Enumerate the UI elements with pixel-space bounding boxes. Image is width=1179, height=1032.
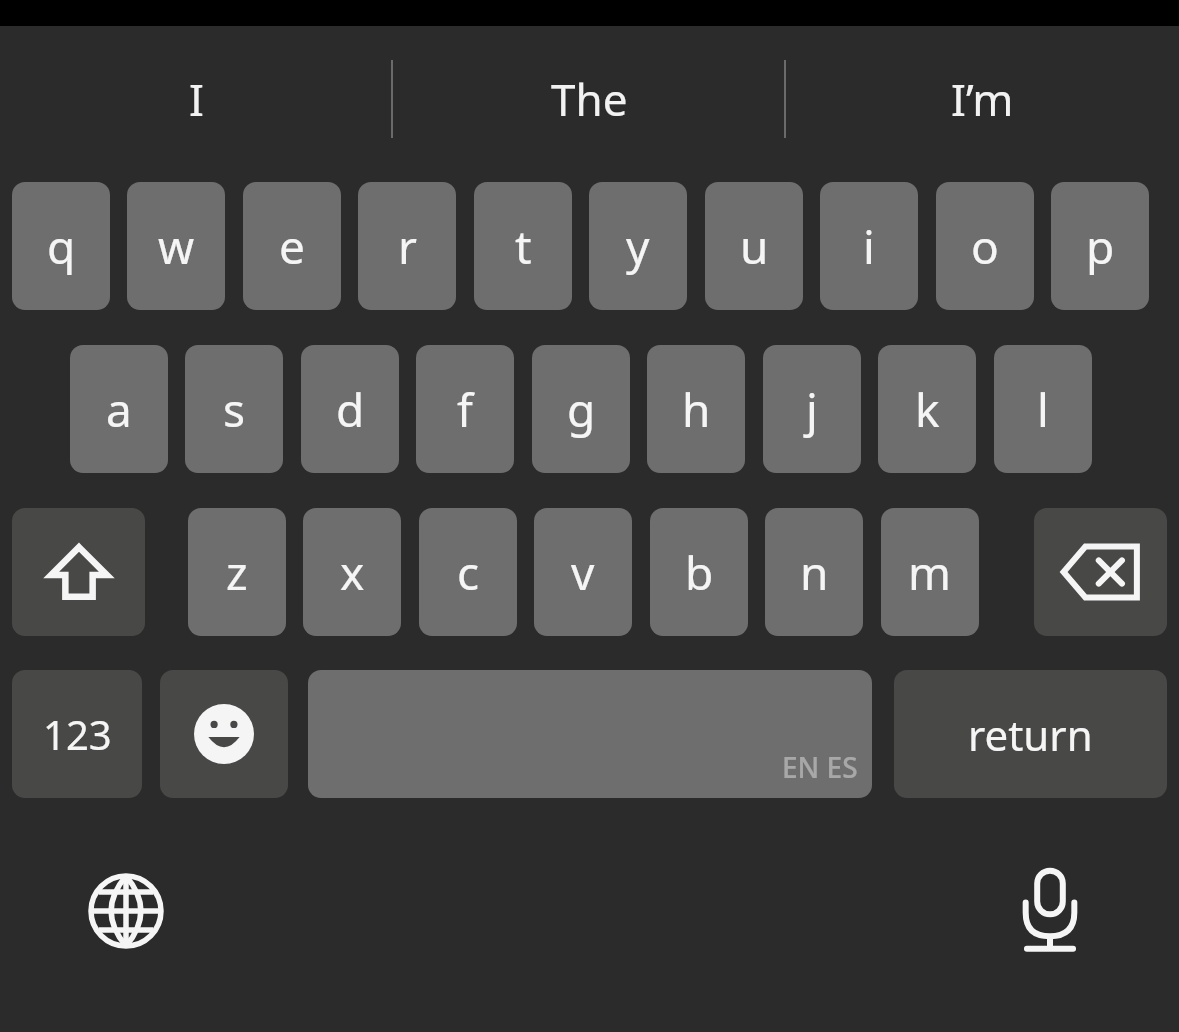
- staticText: g: [567, 378, 596, 441]
- button[interactable]: Backspace: [1034, 508, 1167, 636]
- button[interactable]: o: [936, 182, 1034, 310]
- button[interactable]: x: [303, 508, 401, 636]
- button[interactable]: r: [358, 182, 456, 310]
- staticText: t: [515, 215, 532, 278]
- staticText: j: [806, 378, 818, 441]
- staticText: e: [279, 215, 305, 278]
- staticText: u: [740, 215, 769, 278]
- staticText: c: [457, 541, 480, 604]
- button[interactable]: h: [647, 345, 745, 473]
- staticText: a: [106, 378, 132, 441]
- staticText: o: [971, 215, 999, 278]
- staticText: EN ES: [782, 748, 858, 786]
- button[interactable]: e: [243, 182, 341, 310]
- button[interactable]: p: [1051, 182, 1149, 310]
- button[interactable]: n: [765, 508, 863, 636]
- button[interactable]: q: [12, 182, 110, 310]
- button[interactable]: j: [763, 345, 861, 473]
- staticText: I: [189, 69, 204, 129]
- button[interactable]: The: [393, 26, 786, 171]
- staticText: v: [571, 541, 595, 604]
- staticText: p: [1086, 215, 1115, 278]
- staticText: i: [863, 215, 875, 278]
- button[interactable]: s: [185, 345, 283, 473]
- button[interactable]: 123: [12, 670, 142, 798]
- staticText: return: [968, 706, 1093, 763]
- button[interactable]: l: [994, 345, 1092, 473]
- button[interactable]: y: [589, 182, 687, 310]
- button[interactable]: t: [474, 182, 572, 310]
- button[interactable]: c: [419, 508, 517, 636]
- button[interactable]: f: [416, 345, 514, 473]
- button[interactable]: w: [127, 182, 225, 310]
- button[interactable]: I’m: [786, 26, 1179, 171]
- staticText: w: [158, 215, 195, 278]
- staticText: k: [915, 378, 940, 441]
- staticText: s: [223, 378, 246, 441]
- staticText: n: [800, 541, 829, 604]
- staticText: h: [682, 378, 711, 441]
- button[interactable]: Change keyboard language: [70, 855, 182, 967]
- button[interactable]: m: [881, 508, 979, 636]
- button[interactable]: Emoji: [160, 670, 288, 798]
- button[interactable]: I: [0, 26, 393, 171]
- staticText: f: [457, 378, 473, 441]
- button[interactable]: v: [534, 508, 632, 636]
- staticText: y: [626, 215, 650, 278]
- button[interactable]: b: [650, 508, 748, 636]
- button[interactable]: i: [820, 182, 918, 310]
- button[interactable]: u: [705, 182, 803, 310]
- staticText: l: [1037, 378, 1049, 441]
- button[interactable]: z: [188, 508, 286, 636]
- staticText: q: [47, 215, 76, 278]
- button[interactable]: Shift: [12, 508, 145, 636]
- staticText: I’m: [951, 69, 1014, 129]
- button[interactable]: g: [532, 345, 630, 473]
- button[interactable]: Space: [308, 670, 872, 798]
- staticText: 123: [43, 707, 112, 761]
- button[interactable]: return: [894, 670, 1167, 798]
- staticText: r: [398, 215, 417, 278]
- staticText: z: [226, 541, 248, 604]
- staticText: m: [908, 541, 952, 604]
- staticText: x: [340, 541, 365, 604]
- staticText: d: [336, 378, 365, 441]
- button[interactable]: d: [301, 345, 399, 473]
- staticText: The: [551, 69, 628, 129]
- staticText: b: [685, 541, 714, 604]
- button[interactable]: k: [878, 345, 976, 473]
- button[interactable]: a: [70, 345, 168, 473]
- button[interactable]: Voice input: [994, 855, 1106, 967]
